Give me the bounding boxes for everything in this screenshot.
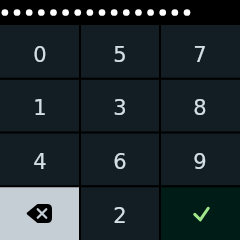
button[interactable]: 1: [0, 78, 80, 132]
staticText: 2: [113, 204, 127, 228]
staticText: 0: [33, 43, 47, 67]
button[interactable]: 0: [0, 25, 80, 78]
button[interactable]: 9: [160, 132, 240, 186]
staticText: 4: [33, 150, 47, 174]
button[interactable]: Confirm: [160, 186, 240, 240]
button[interactable]: 6: [80, 132, 160, 186]
staticText: 8: [193, 96, 207, 120]
button[interactable]: 8: [160, 78, 240, 132]
staticText: 5: [113, 43, 127, 67]
staticText: 1: [33, 96, 47, 120]
button[interactable]: 4: [0, 132, 80, 186]
button[interactable]: Backspace: [0, 186, 80, 240]
staticText: 9: [193, 150, 207, 174]
button[interactable]: 7: [160, 25, 240, 78]
staticText: 7: [193, 43, 207, 67]
staticText: 6: [113, 150, 127, 174]
staticText: 3: [113, 96, 127, 120]
button[interactable]: 3: [80, 78, 160, 132]
button[interactable]: 5: [80, 25, 160, 78]
button[interactable]: 2: [80, 186, 160, 240]
